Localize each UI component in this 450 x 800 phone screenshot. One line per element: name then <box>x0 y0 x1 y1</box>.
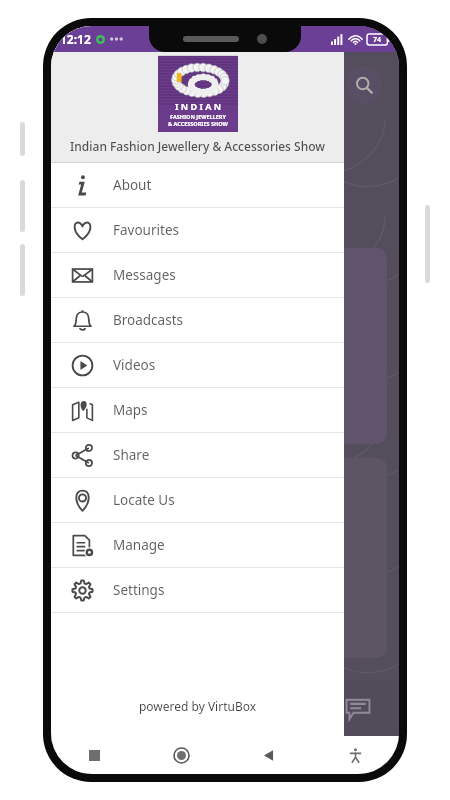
staticText: IFJAS 2022 <box>77 258 164 281</box>
button[interactable]: Favourites <box>51 208 344 252</box>
button[interactable]: Manage <box>51 523 344 567</box>
button[interactable]: Maps <box>51 388 344 432</box>
button[interactable]: Back <box>225 736 312 774</box>
button[interactable]: Search <box>345 66 383 104</box>
staticText: Share <box>113 446 150 464</box>
staticText: About <box>113 176 152 194</box>
button[interactable]: IFJAS 2022 <box>63 248 387 444</box>
staticText: 12:12 <box>60 31 91 47</box>
staticText: JEWELLERY SHOW <box>77 291 191 309</box>
staticText: Manage <box>113 536 165 554</box>
button[interactable]: Home <box>138 736 225 774</box>
button[interactable]: Settings <box>51 568 344 612</box>
button[interactable]: Broadcasts <box>51 298 344 342</box>
staticText: & ACCESSORIES SHOW <box>168 120 228 127</box>
staticText: Locate Us <box>113 491 175 509</box>
button[interactable]: Chat <box>341 691 375 725</box>
staticText: EXPLORE <box>77 549 139 568</box>
staticText: Videos <box>113 356 156 374</box>
staticText: powered by VirtuBox <box>51 698 344 714</box>
staticText: FASHION JEWELLERY <box>170 113 226 120</box>
staticText: Maps <box>113 401 148 419</box>
staticText: Indian Fashion Jewellery & Accessories S… <box>70 138 325 154</box>
staticText: I N D I A N <box>175 100 222 112</box>
staticText: 74 <box>373 35 382 45</box>
staticText: Broadcasts <box>113 311 183 329</box>
staticText: Settings <box>113 581 165 599</box>
button[interactable]: Share <box>51 433 344 477</box>
button[interactable]: About <box>51 163 344 207</box>
button[interactable]: Recents <box>51 736 138 774</box>
button[interactable]: Locate Us <box>51 478 344 522</box>
button[interactable]: Messages <box>51 253 344 297</box>
button[interactable]: EXPLORE <box>63 458 387 658</box>
button[interactable]: Accessibility <box>312 736 399 774</box>
staticText: Messages <box>113 266 176 284</box>
staticText: Favourites <box>113 221 179 239</box>
button[interactable]: Videos <box>51 343 344 387</box>
